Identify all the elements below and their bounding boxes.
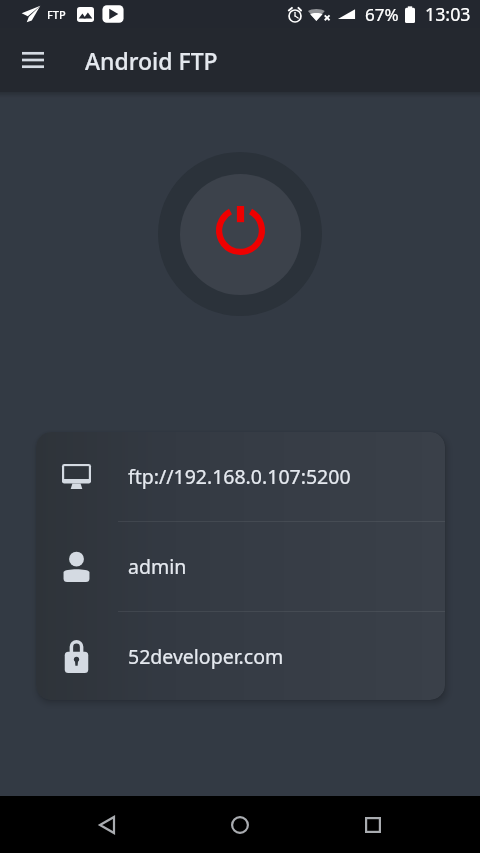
button[interactable]: admin (36, 522, 445, 611)
staticText: 13:03 (425, 2, 471, 26)
button[interactable]: Start or stop FTP server (158, 152, 322, 316)
button[interactable]: 52developer.com (36, 612, 445, 700)
button[interactable]: Open navigation menu (0, 32, 66, 88)
button[interactable]: Home (213, 798, 267, 852)
staticText: admin (128, 553, 187, 580)
button[interactable]: Back (80, 798, 134, 852)
staticText: ftp://192.168.0.107:5200 (128, 463, 351, 490)
staticText: 52developer.com (128, 643, 284, 670)
staticText: Android FTP (85, 45, 218, 76)
button[interactable]: ftp://192.168.0.107:5200 (36, 432, 445, 521)
button[interactable]: Recent apps (346, 798, 400, 852)
staticText: FTP (47, 7, 66, 22)
staticText: 67% (365, 3, 399, 26)
